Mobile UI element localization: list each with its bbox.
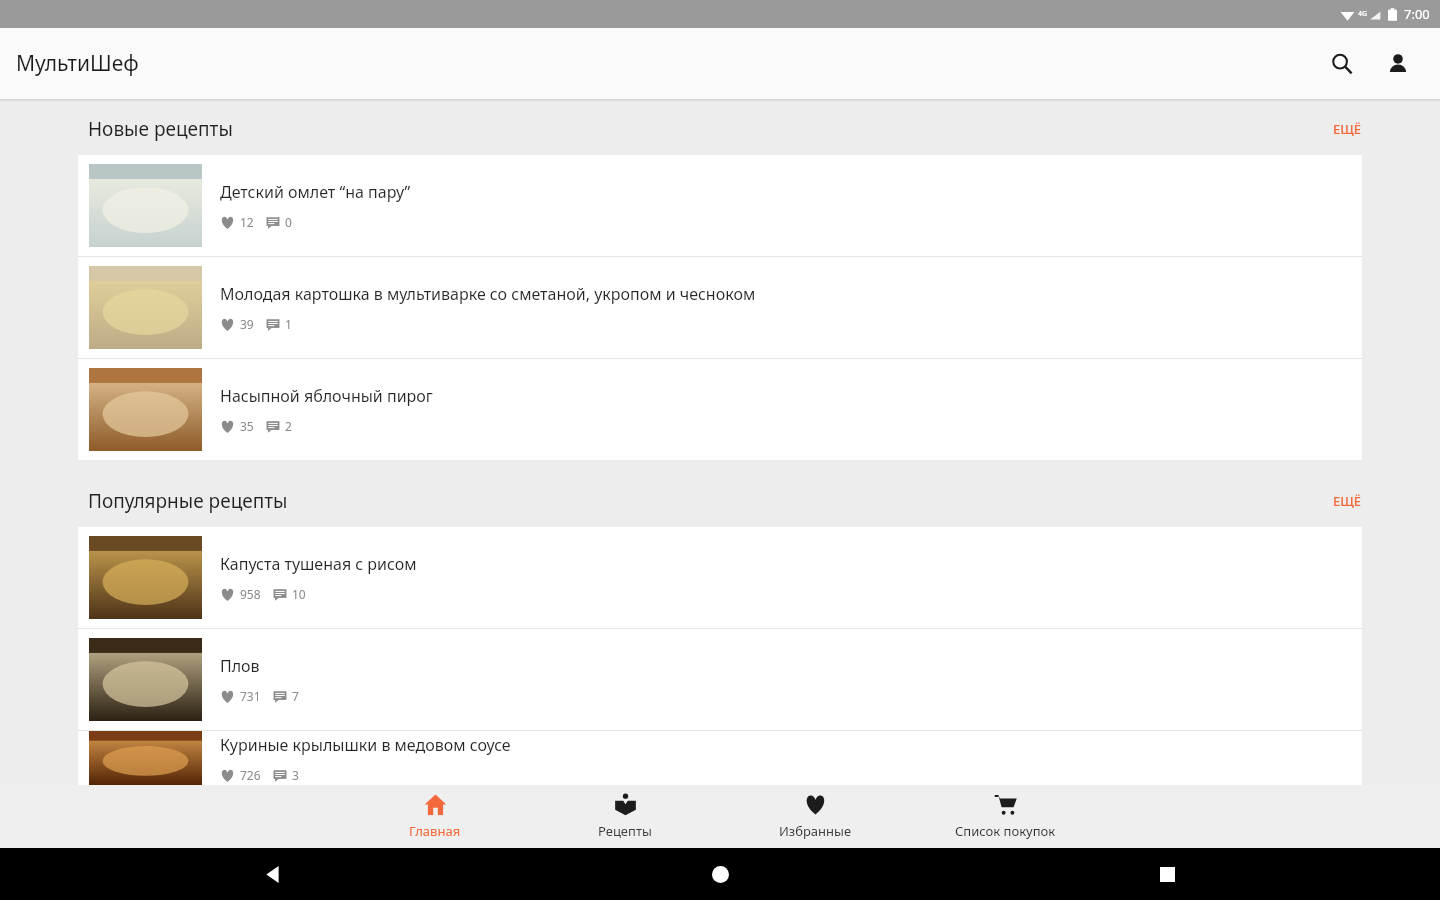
staticText: 0	[285, 214, 292, 230]
staticText: ЕЩЁ	[1333, 492, 1362, 510]
staticText: 7	[292, 688, 299, 704]
button[interactable]: Account	[1374, 40, 1422, 88]
staticText: Капуста тушеная с рисом	[220, 553, 417, 575]
button[interactable]: Избранные	[720, 785, 910, 848]
staticText: 1	[285, 316, 292, 332]
staticText: Детский омлет “на пару”	[220, 181, 411, 203]
staticText: Молодая картошка в мультиварке со сметан…	[220, 283, 756, 305]
button[interactable]: Home	[696, 850, 744, 898]
button[interactable]: Back	[249, 850, 297, 898]
button[interactable]: Recents	[1143, 850, 1191, 898]
staticText: Список покупок	[955, 822, 1056, 840]
staticText: 726	[240, 767, 261, 783]
staticText: Избранные	[779, 822, 852, 840]
staticText: Популярные рецепты	[88, 488, 288, 514]
staticText: Насыпной яблочный пирог	[220, 385, 433, 407]
button[interactable]: Куриные крылышки в медовом соусе	[78, 731, 1362, 785]
staticText: 39	[240, 316, 254, 332]
staticText: 12	[240, 214, 254, 230]
staticText: 7:00	[1404, 5, 1430, 23]
staticText: 2	[285, 418, 292, 434]
staticText: Главная	[409, 822, 461, 840]
staticText: Рецепты	[598, 822, 652, 840]
button[interactable]: Капуста тушеная с рисом	[78, 527, 1362, 628]
button[interactable]: Список покупок	[910, 785, 1100, 848]
staticText: 10	[292, 586, 306, 602]
staticText: Плов	[220, 655, 260, 677]
staticText: 35	[240, 418, 254, 434]
staticText: 958	[240, 586, 261, 602]
button[interactable]: Search	[1318, 40, 1366, 88]
staticText: 3	[292, 767, 299, 783]
staticText: ЕЩЁ	[1333, 120, 1362, 138]
button[interactable]: Насыпной яблочный пирог	[78, 359, 1362, 460]
button[interactable]: Плов	[78, 629, 1362, 730]
staticText: Куриные крылышки в медовом соусе	[220, 734, 511, 756]
button[interactable]: Молодая картошка в мультиварке со сметан…	[78, 257, 1362, 358]
button[interactable]: Детский омлет “на пару”	[78, 155, 1362, 256]
button[interactable]: Главная	[340, 785, 530, 848]
staticText: 4G	[1358, 9, 1368, 19]
button[interactable]: ЕЩЁ	[1327, 116, 1368, 142]
staticText: МультиШеф	[16, 49, 139, 78]
staticText: 731	[240, 688, 261, 704]
button[interactable]: ЕЩЁ	[1327, 488, 1368, 514]
staticText: Новые рецепты	[88, 116, 233, 142]
button[interactable]: Рецепты	[530, 785, 720, 848]
